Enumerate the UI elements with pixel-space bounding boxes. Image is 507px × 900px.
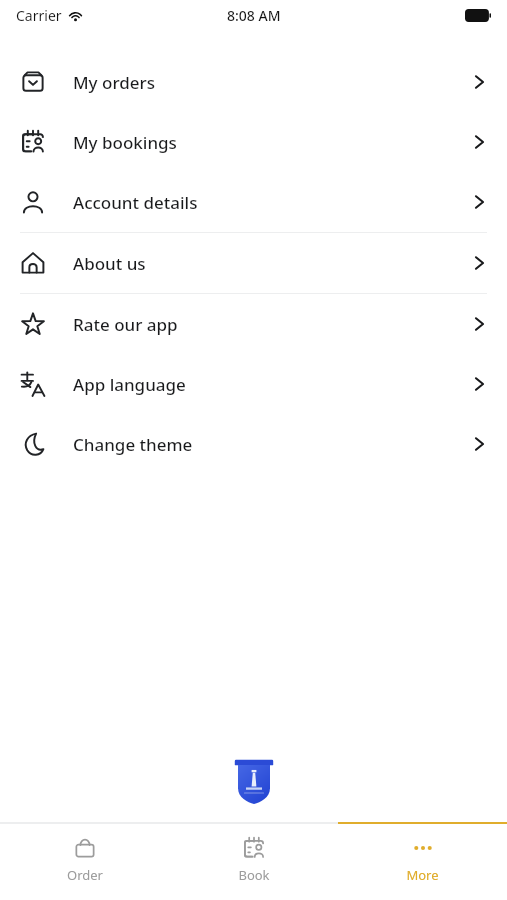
staticText: More: [406, 866, 439, 884]
button[interactable]: About us: [0, 233, 507, 293]
staticText: Order: [67, 866, 103, 884]
staticText: Book: [238, 866, 270, 884]
button[interactable]: More: [338, 824, 507, 900]
button[interactable]: My bookings: [0, 112, 507, 172]
staticText: App language: [73, 373, 186, 396]
staticText: Carrier: [16, 6, 62, 25]
button[interactable]: Order: [0, 824, 169, 900]
button[interactable]: Change theme: [0, 414, 507, 474]
staticText: Rate our app: [73, 313, 178, 336]
button[interactable]: Rate our app: [0, 294, 507, 354]
staticText: Change theme: [73, 433, 193, 456]
staticText: My bookings: [73, 131, 177, 154]
staticText: 8:08 AM: [227, 6, 281, 25]
button[interactable]: My orders: [0, 52, 507, 112]
staticText: My orders: [73, 71, 155, 94]
button[interactable]: App language: [0, 354, 507, 414]
staticText: About us: [73, 252, 146, 275]
button[interactable]: Book: [169, 824, 338, 900]
staticText: Account details: [73, 191, 198, 214]
button[interactable]: Account details: [0, 172, 507, 232]
